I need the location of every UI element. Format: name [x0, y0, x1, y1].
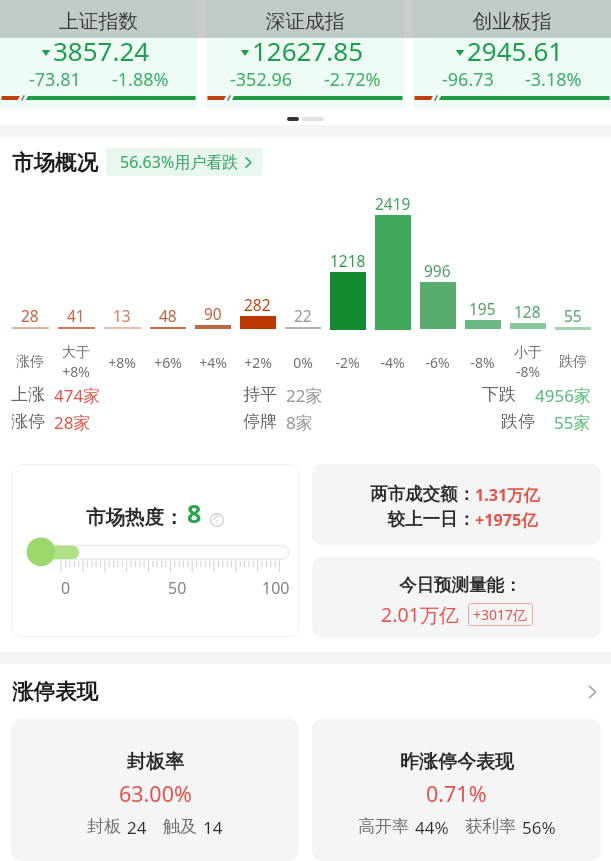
- staticText: +2%: [244, 353, 272, 372]
- staticText: 停牌: [243, 411, 277, 432]
- staticText: 195: [469, 298, 496, 319]
- staticText: 28: [21, 305, 39, 326]
- staticText: 大于 +8%: [62, 344, 90, 381]
- staticText: 22家: [286, 384, 323, 407]
- staticText: 获利率: [465, 816, 516, 837]
- staticText: 涨停: [16, 353, 44, 371]
- staticText: -96.73: [442, 67, 494, 92]
- staticText: 封板率: [127, 750, 184, 774]
- staticText: 跌停: [501, 411, 535, 432]
- staticText: 上证指数: [0, 9, 197, 34]
- staticText: 上涨: [11, 384, 45, 405]
- staticText: 14: [203, 816, 223, 839]
- staticText: 100: [262, 577, 290, 599]
- staticText: 1218: [330, 250, 366, 271]
- staticText: 13: [113, 305, 131, 326]
- staticText: 48: [159, 305, 177, 326]
- staticText: 55: [564, 305, 582, 326]
- staticText: 跌停: [559, 353, 587, 371]
- button[interactable]: 两市成交额：: [312, 464, 601, 545]
- button[interactable]: 封板率: [11, 719, 299, 861]
- staticText: 56.63%用户看跌: [120, 151, 239, 173]
- staticText: 41: [67, 305, 85, 326]
- staticText: 0: [61, 577, 71, 599]
- staticText: 较上一日：: [312, 508, 475, 530]
- staticText: 涨停表现: [12, 678, 98, 705]
- staticText: +1975亿: [475, 509, 538, 531]
- staticText: 56%: [522, 816, 556, 839]
- staticText: 昨涨停今表现: [400, 750, 514, 774]
- staticText: 1.31万亿: [475, 484, 540, 506]
- staticText: 封板: [87, 816, 121, 837]
- staticText: 两市成交额：: [312, 483, 475, 505]
- staticText: 涨停: [11, 411, 45, 432]
- staticText: 2419: [375, 193, 411, 214]
- staticText: 63.00%: [119, 779, 192, 808]
- staticText: 小于 -8%: [514, 344, 542, 381]
- staticText: 90: [204, 303, 222, 324]
- button[interactable]: 市场热度：: [11, 464, 299, 637]
- button[interactable]: 56.63%用户看跌: [106, 148, 263, 176]
- staticText: -3.18%: [525, 67, 582, 92]
- staticText: -2.72%: [324, 67, 381, 92]
- staticText: 12627.85: [252, 33, 364, 68]
- staticText: 28家: [54, 411, 91, 434]
- staticText: 282: [244, 294, 271, 315]
- staticText: -6%: [425, 353, 450, 372]
- staticText: 下跌: [482, 384, 516, 405]
- staticText: -352.96: [230, 67, 293, 92]
- other: More: [587, 683, 599, 701]
- staticText: 触及: [163, 816, 197, 837]
- staticText: 深证成指: [206, 9, 404, 34]
- staticText: 2945.61: [467, 33, 564, 68]
- staticText: 8: [187, 496, 202, 530]
- button[interactable]: 深证成指: [206, 0, 404, 108]
- staticText: 2.01万亿: [381, 601, 459, 628]
- button[interactable]: 昨涨停今表现: [312, 719, 601, 861]
- staticText: 今日预测量能：: [399, 574, 522, 596]
- other: Help: [210, 513, 224, 527]
- staticText: +8%: [108, 353, 136, 372]
- staticText: 128: [514, 301, 541, 322]
- staticText: 24: [127, 816, 147, 839]
- staticText: 55家: [554, 411, 591, 434]
- staticText: +3017亿: [473, 605, 528, 624]
- staticText: 0%: [293, 353, 313, 372]
- staticText: 8家: [286, 411, 313, 434]
- staticText: -8%: [470, 353, 495, 372]
- staticText: -1.88%: [112, 67, 169, 92]
- staticText: -73.81: [29, 67, 81, 92]
- staticText: +4%: [199, 353, 227, 372]
- staticText: 0.71%: [426, 779, 487, 808]
- button[interactable]: 创业板指: [413, 0, 611, 108]
- staticText: 996: [424, 260, 451, 281]
- staticText: 44%: [415, 816, 449, 839]
- staticText: 3857.24: [53, 33, 150, 68]
- button[interactable]: 上证指数: [0, 0, 197, 108]
- staticText: 市场概况: [12, 149, 98, 176]
- staticText: -4%: [380, 353, 405, 372]
- staticText: 持平: [243, 384, 277, 405]
- button[interactable]: 今日预测量能：: [312, 557, 601, 638]
- staticText: -2%: [335, 353, 360, 372]
- staticText: 创业板指: [413, 9, 611, 34]
- staticText: 4956家: [535, 384, 591, 407]
- staticText: 50: [168, 577, 187, 599]
- staticText: 市场热度：: [86, 505, 184, 530]
- staticText: +6%: [154, 353, 182, 372]
- staticText: 高开率: [358, 816, 409, 837]
- staticText: 22: [294, 305, 312, 326]
- staticText: 474家: [54, 384, 101, 407]
- button[interactable]: 涨停表现: [0, 678, 611, 705]
